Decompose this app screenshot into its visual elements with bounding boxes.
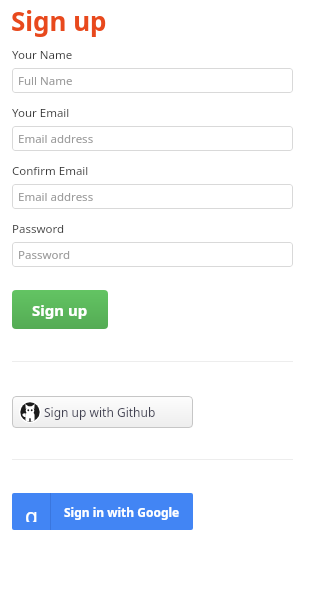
staticText: Email address	[18, 189, 94, 205]
staticText: Password	[18, 247, 71, 263]
other: Github	[19, 401, 41, 423]
button[interactable]: Google	[12, 493, 193, 530]
staticText: Full Name	[18, 73, 73, 89]
staticText: Your Email	[12, 105, 70, 121]
button[interactable]: Password	[12, 242, 293, 267]
button[interactable]: Email address	[12, 126, 293, 151]
other: Google	[21, 502, 41, 522]
staticText: Password	[12, 221, 65, 237]
staticText: Sign up	[32, 300, 88, 320]
staticText: Sign up	[11, 3, 107, 38]
button[interactable]: Github	[12, 396, 193, 428]
button[interactable]: Sign up	[12, 290, 108, 329]
button[interactable]: Email address	[12, 184, 293, 209]
staticText: Sign in with Google	[64, 504, 180, 520]
staticText: g	[25, 502, 38, 522]
staticText: Confirm Email	[12, 163, 89, 179]
button[interactable]: Full Name	[12, 68, 293, 93]
staticText: Your Name	[12, 47, 73, 63]
staticText: Email address	[18, 131, 94, 147]
staticText: Sign up with Github	[44, 404, 156, 420]
